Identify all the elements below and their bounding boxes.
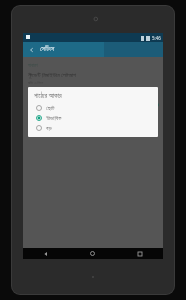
staticText: শব্দ xyxy=(28,102,145,108)
staticText: ছোট xyxy=(46,105,55,111)
staticText: পাঠ্যের আকার xyxy=(28,124,54,132)
button[interactable]: ছোট xyxy=(34,103,152,113)
staticText: নোটিফিকেশন xyxy=(28,93,47,98)
button[interactable]: বড় xyxy=(34,123,152,133)
button[interactable]: Home xyxy=(69,248,116,259)
button[interactable]: Back xyxy=(26,44,37,55)
button[interactable]: স্টুডেন্ট রিমাইন্ডার সেটআপ xyxy=(23,69,163,88)
staticText: 5:46 xyxy=(152,35,161,41)
staticText: বড় xyxy=(46,125,52,131)
button[interactable]: Back xyxy=(23,248,69,259)
staticText: স্বাভাবিক xyxy=(46,115,62,121)
button[interactable]: স্বাভাবিক xyxy=(34,113,152,123)
button[interactable]: শব্দ xyxy=(23,99,163,111)
staticText: সেটিংস xyxy=(40,46,55,53)
staticText: প্রদর্শন xyxy=(28,116,37,121)
staticText: পাঠ্যের আকার xyxy=(34,91,62,100)
staticText: স্টুডেন্ট রিমাইন্ডার সেটআপ xyxy=(28,71,77,79)
staticText: সাধারণ xyxy=(28,63,38,68)
other: Sound toggle xyxy=(145,101,159,109)
button[interactable]: Recent apps xyxy=(116,248,163,259)
button[interactable]: পাঠ্যের আকার xyxy=(23,122,163,134)
